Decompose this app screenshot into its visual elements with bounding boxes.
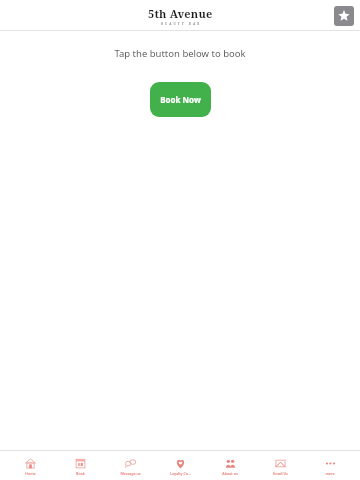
staticText: Home xyxy=(25,471,36,476)
staticText: Tap the button below to book xyxy=(0,47,360,60)
button[interactable]: About us xyxy=(205,455,255,476)
button[interactable]: Home xyxy=(5,455,55,476)
staticText: About us xyxy=(222,471,238,476)
staticText: Book Now xyxy=(160,94,201,105)
staticText: Message us xyxy=(120,471,141,476)
button[interactable]: Email Us xyxy=(255,455,305,476)
staticText: Loyalty Ca... xyxy=(170,471,191,476)
button[interactable]: Message us xyxy=(105,455,155,476)
staticText: Email Us xyxy=(273,471,288,476)
staticText: more xyxy=(325,471,335,476)
staticText: B E A U T Y B A R xyxy=(161,22,200,26)
button[interactable]: Favorites xyxy=(334,6,354,26)
button[interactable]: Book xyxy=(55,455,105,476)
button[interactable]: more xyxy=(305,455,355,476)
button[interactable]: Loyalty Ca... xyxy=(155,455,205,476)
button[interactable]: Book Now xyxy=(150,82,211,117)
staticText: 5th Avenue xyxy=(148,6,213,21)
staticText: Book xyxy=(76,471,85,476)
